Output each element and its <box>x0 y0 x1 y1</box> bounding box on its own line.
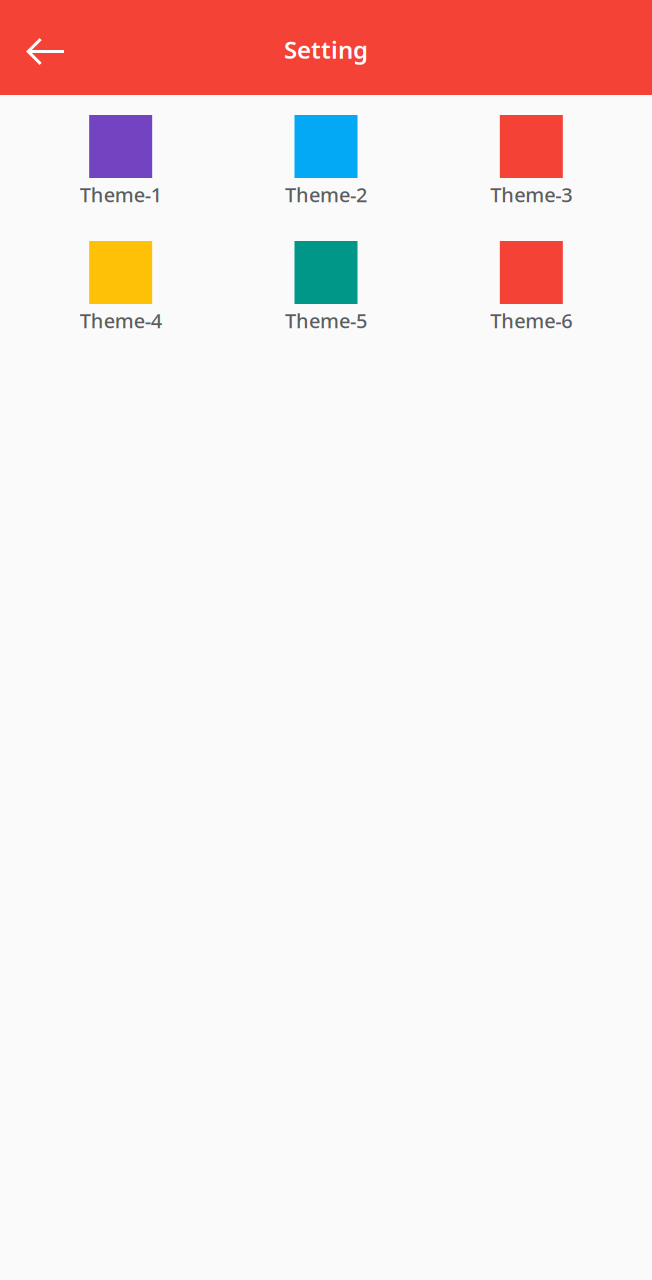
button[interactable]: Theme-1 <box>18 115 223 241</box>
button[interactable]: Theme-5 <box>223 241 429 367</box>
staticText: Theme-2 <box>285 181 367 208</box>
staticText: Theme-1 <box>80 181 162 208</box>
button[interactable]: Theme-6 <box>429 241 634 367</box>
button[interactable]: Theme-3 <box>429 115 634 241</box>
staticText: Theme-4 <box>80 307 162 334</box>
button[interactable]: Theme-2 <box>223 115 429 241</box>
staticText: Theme-5 <box>285 307 367 334</box>
button[interactable]: Theme-4 <box>18 241 223 367</box>
staticText: Theme-6 <box>490 307 572 334</box>
staticText: Setting <box>284 34 368 65</box>
button[interactable]: Back <box>0 0 92 95</box>
staticText: Theme-3 <box>490 181 572 208</box>
